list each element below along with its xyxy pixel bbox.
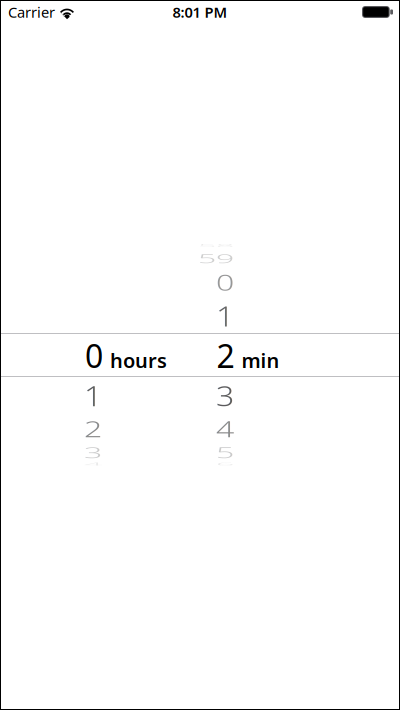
staticText: min <box>241 347 279 373</box>
button[interactable]: 3 <box>165 377 285 414</box>
staticText: 0 <box>85 334 103 377</box>
button[interactable]: 4 <box>165 414 285 443</box>
staticText: 59 <box>198 237 234 279</box>
staticText: 4 <box>216 407 234 450</box>
button[interactable]: 2 <box>33 414 153 443</box>
staticText: Carrier <box>8 2 55 22</box>
staticText: 2 <box>84 407 102 450</box>
button[interactable]: 2 <box>168 334 328 377</box>
button[interactable]: 59 <box>156 249 276 267</box>
staticText: 1 <box>216 295 234 337</box>
button[interactable]: 0 <box>165 268 285 297</box>
button[interactable]: 0 <box>46 334 206 377</box>
staticText: 5 <box>216 431 234 474</box>
staticText: 3 <box>216 374 234 417</box>
button[interactable]: 5 <box>165 443 285 462</box>
staticText: 2 <box>216 334 234 377</box>
staticText: 3 <box>84 431 102 474</box>
staticText: 8:01 PM <box>172 2 227 22</box>
staticText: 58 <box>198 224 234 267</box>
staticText: 0 <box>216 261 234 304</box>
button[interactable]: 3 <box>33 443 153 462</box>
button[interactable]: 1 <box>165 298 285 334</box>
staticText: hours <box>110 347 167 373</box>
staticText: 6 <box>216 443 234 485</box>
button[interactable]: 1 <box>33 377 153 414</box>
staticText: 4 <box>84 443 102 485</box>
staticText: 1 <box>84 374 102 417</box>
